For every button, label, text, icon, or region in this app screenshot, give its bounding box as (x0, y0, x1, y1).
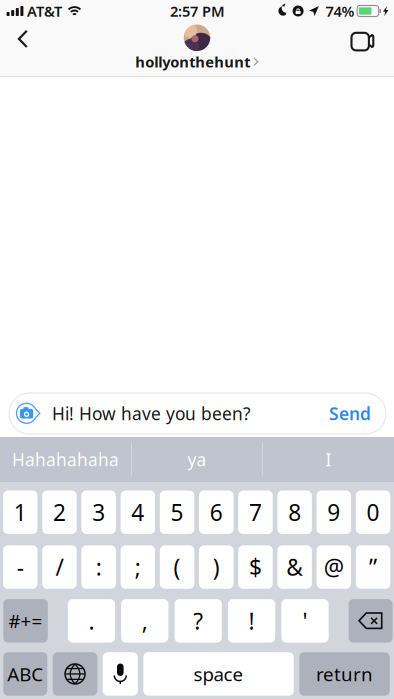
staticText: 3 (92, 497, 105, 527)
staticText: & (286, 552, 303, 582)
staticText: 6 (210, 497, 223, 527)
staticText: 2:57 PM (170, 1, 225, 21)
staticText: ” (369, 552, 377, 582)
staticText: space (193, 662, 243, 686)
button[interactable]: , (121, 599, 168, 643)
button[interactable]: 5 (160, 490, 194, 534)
staticText: 9 (327, 497, 340, 527)
staticText: #+= (8, 608, 42, 633)
button[interactable]: Video call (337, 23, 394, 61)
button[interactable]: Change keyboard (53, 652, 97, 696)
button[interactable]: ! (228, 599, 275, 643)
button[interactable]: - (3, 545, 37, 589)
staticText: Send (329, 402, 371, 425)
button[interactable]: ya (132, 437, 262, 482)
button[interactable]: . (68, 599, 115, 643)
staticText: ' (302, 606, 307, 636)
staticText: 0 (366, 497, 379, 527)
button[interactable]: $ (238, 545, 273, 589)
staticText: 5 (171, 497, 184, 527)
staticText: - (17, 552, 24, 582)
button[interactable]: ABC (3, 652, 47, 696)
staticText: I (325, 448, 331, 471)
staticText: . (88, 606, 94, 636)
button[interactable]: space (143, 652, 294, 696)
button[interactable]: I (263, 437, 394, 482)
button[interactable]: 8 (277, 490, 312, 534)
button[interactable]: Dictation (103, 652, 138, 696)
staticText: ) (213, 552, 220, 582)
staticText: return (316, 662, 373, 686)
button[interactable]: ” (356, 545, 390, 589)
button[interactable]: return (299, 652, 390, 696)
staticText: Hahahahaha (12, 448, 119, 471)
button[interactable]: ? (175, 599, 222, 643)
staticText: ? (193, 606, 203, 636)
button[interactable]: #+= (3, 599, 48, 643)
button[interactable]: Hahahahaha (0, 437, 131, 482)
staticText: 74% (326, 1, 355, 21)
button[interactable]: hollyonthehunt (135, 22, 259, 71)
staticText: 7 (249, 497, 262, 527)
button[interactable]: ) (199, 545, 233, 589)
button[interactable]: ' (281, 599, 329, 643)
staticText: ( (174, 552, 181, 582)
staticText: $ (249, 552, 262, 582)
staticText: 1 (14, 497, 27, 527)
button[interactable]: Send (314, 393, 386, 434)
button[interactable]: @ (317, 545, 351, 589)
button[interactable]: 9 (317, 490, 351, 534)
staticText: 8 (288, 497, 301, 527)
staticText: hollyonthehunt (135, 52, 250, 71)
button[interactable]: / (42, 545, 77, 589)
staticText: ! (249, 606, 255, 636)
button[interactable]: 0 (356, 490, 390, 534)
button[interactable]: 7 (238, 490, 273, 534)
staticText: @ (324, 552, 344, 582)
button[interactable]: 6 (199, 490, 233, 534)
button[interactable]: ; (121, 545, 155, 589)
staticText: 4 (131, 497, 144, 527)
button[interactable]: Camera (9, 393, 41, 434)
staticText: ya (187, 448, 206, 471)
staticText: : (96, 552, 102, 582)
staticText: Hi! How have you been? (52, 402, 251, 425)
button[interactable]: & (277, 545, 312, 589)
button[interactable]: Delete (349, 599, 393, 643)
button[interactable]: Back (1, 20, 42, 58)
button[interactable]: ( (160, 545, 194, 589)
staticText: ABC (7, 662, 43, 686)
staticText: / (55, 552, 63, 582)
button[interactable]: : (81, 545, 116, 589)
staticText: , (142, 606, 148, 636)
button[interactable]: 4 (121, 490, 155, 534)
button[interactable]: 2 (42, 490, 77, 534)
staticText: ; (135, 552, 141, 582)
button[interactable]: 1 (3, 490, 37, 534)
staticText: 2 (53, 497, 66, 527)
staticText: AT&T (27, 1, 62, 21)
button[interactable]: 3 (81, 490, 116, 534)
